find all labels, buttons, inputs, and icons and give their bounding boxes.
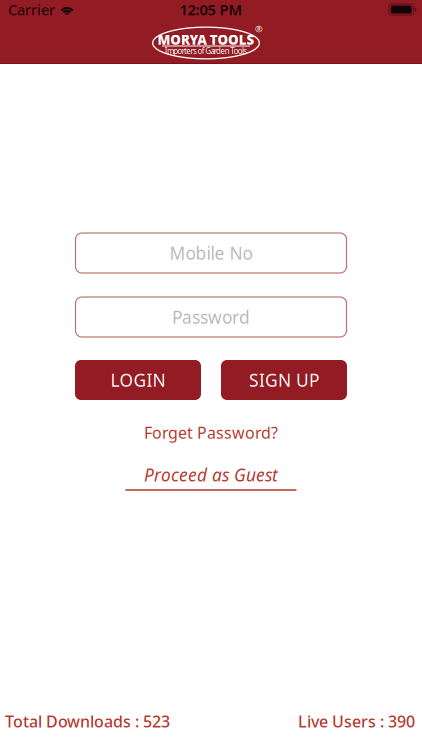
button[interactable]: LOGIN	[75, 360, 201, 400]
staticText: Password	[172, 305, 250, 328]
staticText: Carrier	[8, 0, 55, 19]
button[interactable]: SIGN UP	[221, 360, 347, 400]
button[interactable]: Forget Password?	[144, 422, 278, 443]
staticText: Forget Password?	[144, 422, 278, 443]
staticText: Mobile No	[169, 241, 252, 264]
staticText: 12:05 PM	[179, 0, 242, 19]
staticText: Proceed as Guest	[144, 463, 278, 486]
staticText: LOGIN	[110, 368, 165, 391]
staticText: ®	[255, 23, 263, 35]
button[interactable]: Proceed as Guest	[125, 463, 296, 491]
button[interactable]: Password	[75, 297, 346, 337]
staticText: Total Downloads : 523	[5, 711, 170, 732]
staticText: SIGN UP	[249, 368, 319, 391]
staticText: Live Users : 390	[298, 711, 415, 732]
button[interactable]: Mobile No	[75, 233, 346, 273]
staticText: MORYA TOOLS	[157, 31, 254, 48]
staticText: Importers of Garden Tools	[165, 46, 247, 56]
